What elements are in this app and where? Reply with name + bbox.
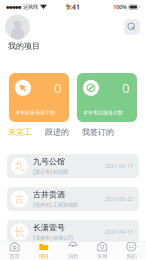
staticText: 九号公馆 [33, 157, 65, 167]
staticText: 0 [122, 79, 130, 97]
staticText: 我的 [126, 253, 136, 260]
button[interactable]: 长 [7, 220, 139, 244]
button[interactable]: 项目 [29, 240, 58, 260]
staticText: 我签订的 [82, 127, 114, 137]
staticText: 9:41 [66, 3, 80, 11]
button[interactable]: 我的 [117, 240, 146, 260]
staticText: 2021-05-22 [105, 195, 133, 203]
staticText: 0 [54, 79, 62, 97]
staticText: 长 [14, 225, 25, 238]
button[interactable]: 消息 [58, 240, 88, 260]
button[interactable]: 首页 [0, 240, 29, 260]
button[interactable]: 九 [7, 154, 139, 178]
staticText: 运营商 [21, 4, 40, 10]
staticText: 本年设备安装个数 [15, 109, 55, 116]
staticText: 我的项目 [8, 41, 40, 51]
staticText: 消息 [68, 253, 78, 260]
button[interactable]: 0 [77, 73, 137, 122]
staticText: 2021-04-13 [105, 228, 133, 236]
staticText: [淮南市] 装饰公司 [33, 234, 73, 241]
staticText: 100% [113, 3, 127, 11]
staticText: 项目 [39, 253, 49, 260]
staticText: 首页 [10, 253, 20, 260]
staticText: 跟进的 [45, 127, 69, 137]
staticText: [亳州市] 工程装饰部 [33, 201, 78, 208]
button[interactable]: 应用 [88, 240, 117, 260]
staticText: 古井贡酒 [33, 190, 65, 200]
staticText: [黄石市] 科技园 [33, 168, 68, 175]
button[interactable]: 跟进的 [45, 127, 69, 137]
staticText: 本年售后服务次数 [83, 109, 123, 116]
staticText: ●●●●● [6, 5, 21, 9]
staticText: 九 [14, 159, 25, 172]
button[interactable]: 我签订的 [82, 127, 114, 137]
staticText: 古 [14, 192, 25, 205]
button[interactable]: Profile [5, 14, 30, 39]
button[interactable]: Search [124, 19, 140, 35]
staticText: 2021-06-11 [105, 162, 133, 170]
staticText: 长潇壹号 [33, 223, 65, 233]
button[interactable]: 未完工 [8, 127, 32, 137]
button[interactable]: 古 [7, 187, 139, 211]
staticText: 应用 [97, 253, 107, 260]
button[interactable]: 0 [9, 73, 69, 122]
staticText: 未完工 [8, 127, 32, 137]
